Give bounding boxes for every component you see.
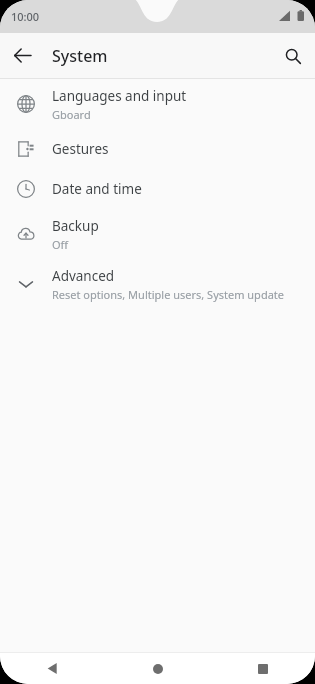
staticText: Backup [52, 217, 99, 235]
button[interactable]: Date and time [0, 169, 315, 209]
staticText: Gestures [52, 140, 109, 158]
staticText: Date and time [52, 180, 142, 198]
staticText: Gboard [52, 107, 91, 122]
staticText: Languages and input [52, 87, 187, 105]
staticText: 10:00 [11, 9, 40, 24]
staticText: System [52, 45, 108, 67]
button[interactable]: Recent apps [210, 653, 315, 684]
button[interactable]: Advanced [0, 259, 315, 309]
button[interactable]: Languages and input [0, 79, 315, 129]
button[interactable]: Gestures [0, 129, 315, 169]
button[interactable]: Search [278, 41, 308, 71]
staticText: Advanced [52, 267, 115, 285]
staticText: Off [52, 237, 69, 252]
button[interactable]: Backup [0, 209, 315, 259]
button[interactable]: Back [0, 653, 105, 684]
staticText: Reset options, Multiple users, System up… [52, 287, 284, 302]
button[interactable]: Home [105, 653, 210, 684]
button[interactable]: Back [8, 41, 37, 70]
